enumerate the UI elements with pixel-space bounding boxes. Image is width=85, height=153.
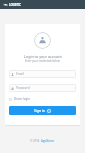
button[interactable]: AppName	[41, 139, 55, 143]
button[interactable]: Driver login	[9, 96, 76, 102]
staticText: © 2016	[30, 139, 41, 143]
button[interactable]: Logistic home	[3, 2, 8, 7]
staticText: Sign in	[34, 108, 45, 113]
staticText: Password	[16, 86, 30, 90]
staticText: Enter your credentials below	[25, 59, 60, 63]
staticText: Login to your account	[24, 54, 62, 59]
button[interactable]: Password	[11, 84, 76, 92]
staticText: Email	[16, 72, 24, 76]
button[interactable]: Email	[11, 70, 76, 78]
staticText: LOGISTIC	[9, 3, 21, 7]
button[interactable]: Sign in	[9, 106, 76, 115]
staticText: Driver login	[14, 97, 30, 101]
